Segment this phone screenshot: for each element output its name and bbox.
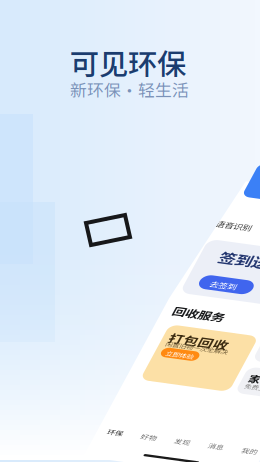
staticText: 签到送环保金 xyxy=(26,88,128,113)
staticText: 环保 xyxy=(10,338,26,350)
staticText: 新环保·轻生活 xyxy=(70,77,189,101)
staticText: 可见环保 xyxy=(70,41,186,83)
staticText: 回收服务 xyxy=(10,168,62,187)
staticText: 打包回收 xyxy=(20,202,80,223)
staticText: 好物 xyxy=(44,338,60,350)
staticText: 去签到 xyxy=(31,130,58,143)
staticText: 旧衣回收 xyxy=(116,198,164,215)
staticText: 我的 xyxy=(146,338,162,350)
staticText: 闲置旧物一次全解决 xyxy=(20,216,83,227)
